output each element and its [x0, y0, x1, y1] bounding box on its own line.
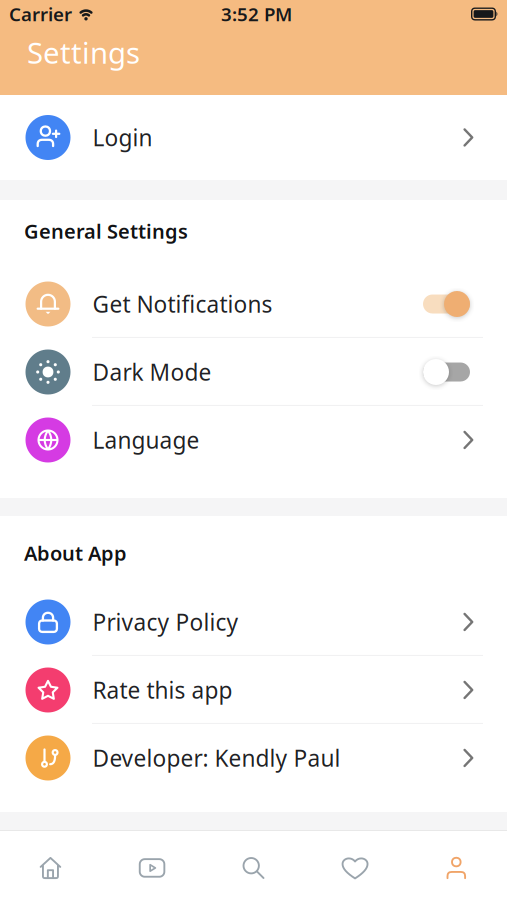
staticText: About App	[24, 540, 127, 566]
staticText: Login	[92, 122, 152, 152]
staticText: Rate this app	[92, 675, 232, 705]
staticText: 3:52 PM	[221, 2, 292, 26]
staticText: General Settings	[24, 218, 188, 244]
staticText: Settings	[27, 33, 140, 72]
staticText: Developer: Kendly Paul	[92, 743, 340, 773]
staticText: Carrier	[9, 2, 72, 26]
staticText: Get Notifications	[92, 289, 272, 319]
staticText: Privacy Policy	[92, 607, 238, 637]
staticText: Dark Mode	[92, 357, 211, 387]
staticText: Language	[92, 425, 199, 455]
